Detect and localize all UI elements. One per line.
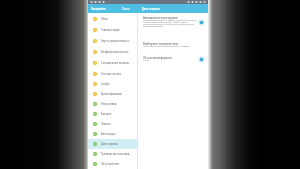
staticText: Использовать дату и время, указанные в с… (143, 18, 197, 27)
button[interactable]: Руководство пользова... (88, 149, 137, 159)
button[interactable]: Настройки (88, 4, 137, 13)
button[interactable]: Специальные возмож... (88, 57, 137, 68)
button[interactable]: Об устройстве (88, 159, 137, 169)
staticText: Автоматическое время (143, 16, 178, 20)
staticText: 24-часовой формат (143, 56, 172, 60)
staticText: Об устройстве (101, 162, 120, 166)
staticText: Память (101, 122, 111, 126)
button[interactable]: Выберите часовой пояс (138, 42, 208, 49)
button[interactable]: Дата и время (137, 4, 208, 13)
button[interactable]: Google (88, 79, 137, 89)
button[interactable]: Дата и время (88, 139, 137, 149)
staticText: Звук и уведомления и... (101, 39, 131, 43)
staticText: Язык и ввод (101, 102, 117, 106)
staticText: Поиск (122, 7, 130, 11)
staticText: Конфиденциальность (101, 50, 129, 54)
button[interactable]: Автоматическое время (138, 16, 208, 29)
staticText: Аутентификация (101, 92, 122, 96)
staticText: GMT+03:00 Московское время, стандарт (143, 44, 190, 47)
staticText: Дата и время (142, 7, 160, 11)
button[interactable]: 24-часовой формат (198, 56, 205, 63)
staticText: Главный экран (101, 28, 120, 32)
staticText: Руководство пользова... (101, 152, 132, 156)
staticText: Специальные возмож... (101, 61, 131, 65)
button[interactable]: Батарея (88, 109, 137, 119)
button[interactable]: Главный экран (88, 24, 137, 35)
button[interactable]: Учётные записи (88, 68, 137, 79)
button[interactable]: Аксессуары (88, 129, 137, 139)
staticText: Выберите часовой пояс (143, 42, 179, 46)
staticText: Настройки (91, 7, 106, 11)
staticText: Аксессуары (101, 132, 116, 136)
button[interactable]: Поиск (122, 4, 138, 13)
button[interactable]: Аутентификация (88, 89, 137, 99)
button[interactable]: Автоматическое время (198, 19, 205, 26)
button[interactable]: Обои (88, 13, 137, 24)
staticText: 13:00 (143, 58, 150, 61)
staticText: Обои (101, 17, 108, 21)
staticText: Дата и время (101, 142, 118, 146)
staticText: Учётные записи (101, 72, 122, 76)
staticText: Google (101, 82, 110, 86)
button[interactable]: Память (88, 119, 137, 129)
button[interactable]: Конфиденциальность (88, 46, 137, 57)
button[interactable]: Язык и ввод (88, 99, 137, 109)
button[interactable]: 24-часовой формат (138, 56, 208, 63)
button[interactable]: Звук и уведомления и... (88, 35, 137, 46)
staticText: Батарея (101, 112, 112, 116)
